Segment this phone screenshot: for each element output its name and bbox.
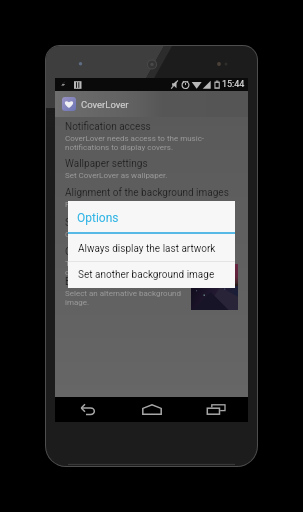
button[interactable]: Back [55,397,120,422]
staticText: Notification access [65,121,151,133]
button[interactable]: Current background [55,245,248,283]
staticText: Select an alternative background image. [65,289,182,307]
staticText: Current background [65,246,153,258]
staticText: 15:44 [222,79,245,90]
staticText: Pick the alignment of the cover art. [65,200,189,209]
button[interactable]: Home [120,397,184,422]
button[interactable]: Wallpaper settings [55,157,248,180]
staticText: Set CoverLover as wallpaper. [65,171,168,180]
staticText: Wallpaper settings [65,158,148,170]
staticText: Change the image with every song. [65,230,189,239]
staticText: Always display the last artwork [78,243,216,255]
staticText: CoverLover [81,99,129,110]
button[interactable]: Shuffle the background [55,216,248,239]
staticText: Alignment of the background images [65,187,229,199]
staticText: Options [77,211,119,225]
button[interactable]: Always display the last artwork [68,234,235,261]
button[interactable]: Notification access [55,120,248,152]
button[interactable]: Set another background image [68,262,235,288]
staticText: Background image [65,276,149,288]
button[interactable]: Alignment of the background images [55,186,248,209]
staticText: Tap to preview the artwork that is curre… [65,259,184,277]
staticText: Shuffle the background [65,217,168,229]
staticText: CoverLover needs access to the music- no… [65,134,205,152]
button[interactable]: CoverLover [55,91,248,117]
button[interactable]: Recent apps [184,397,248,422]
staticText: Set another background image [78,269,215,281]
button[interactable]: Background image [55,275,248,313]
